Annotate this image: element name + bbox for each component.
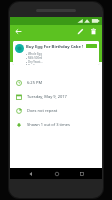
staticText: Milk 500ml [28, 56, 43, 60]
staticText: Buy Egg For Birthday Cake ! [26, 44, 84, 50]
button[interactable]: Delete [88, 26, 99, 37]
button[interactable]: Shown 1 out of 3 times [10, 117, 102, 131]
staticText: Dry Sugar [28, 64, 42, 65]
button[interactable]: Edit [75, 26, 86, 37]
button[interactable]: Recent apps [76, 168, 87, 179]
button[interactable]: Buy Egg For Birthday Cake ! [13, 41, 99, 65]
button[interactable]: Back [13, 26, 24, 37]
button[interactable]: Back [25, 168, 36, 179]
staticText: Does not repeat [27, 108, 58, 113]
staticText: Shown 1 out of 3 times [27, 122, 70, 127]
staticText: Whole Egg [28, 52, 43, 56]
button[interactable]: Status [86, 44, 97, 48]
staticText: Dry Yeast... [28, 60, 43, 64]
staticText: 6:25 PM [27, 80, 43, 85]
button[interactable]: 6:25 PM [10, 75, 102, 89]
button[interactable]: Does not repeat [10, 103, 102, 117]
button[interactable]: Tuesday, May 9, 2017 [10, 89, 102, 103]
staticText: Tuesday, May 9, 2017 [27, 94, 67, 99]
button[interactable]: Home [51, 168, 62, 179]
